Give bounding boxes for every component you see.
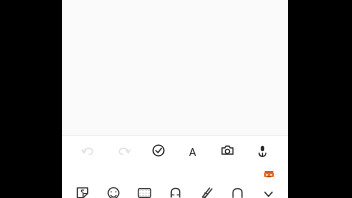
button[interactable]: Undo (73, 136, 103, 165)
button[interactable]: Redo (108, 136, 138, 165)
button[interactable]: Checklist (143, 136, 173, 165)
button[interactable]: Attach (161, 184, 189, 198)
button[interactable]: Camera (212, 136, 242, 165)
button[interactable]: Emoji (99, 184, 127, 198)
button[interactable]: Draw (192, 184, 220, 198)
button[interactable]: Collapse (254, 184, 282, 198)
button[interactable]: Keyboard (130, 184, 158, 198)
staticText: Aa (186, 144, 199, 157)
button[interactable]: Voice input (247, 136, 277, 165)
button[interactable]: Text format (177, 136, 207, 165)
button[interactable]: Stickers (68, 184, 96, 198)
button[interactable]: Sticker suggestion (262, 168, 276, 182)
button[interactable]: Shapes (223, 184, 251, 198)
